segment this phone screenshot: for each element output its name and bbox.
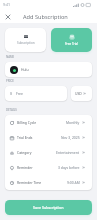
staticText: PRICE xyxy=(6,79,14,83)
button[interactable]: Reminder xyxy=(5,160,92,175)
staticText: DETAILS xyxy=(6,108,17,112)
button[interactable]: Category xyxy=(5,145,92,160)
button[interactable]: $ xyxy=(5,86,67,101)
button[interactable]: Close xyxy=(2,11,14,23)
staticText: Nov 3, 2025 xyxy=(61,135,80,140)
staticText: 3 days before xyxy=(58,165,80,170)
button[interactable]: Reminder Time xyxy=(5,175,92,190)
staticText: 9:00 AM xyxy=(67,180,80,185)
button[interactable]: Save Subscription xyxy=(5,200,92,215)
staticText: Trial Ends xyxy=(17,135,33,140)
staticText: Monthly xyxy=(66,120,80,125)
staticText: Free Trial xyxy=(65,42,78,46)
staticText: Reminder Time xyxy=(17,180,42,185)
button[interactable]: Trial Ends xyxy=(5,130,92,145)
staticText: Hulu xyxy=(21,67,29,72)
button[interactable]: Hulu xyxy=(5,62,92,77)
button[interactable]: Subscription xyxy=(5,28,46,52)
staticText: Subscription xyxy=(17,41,35,45)
button[interactable]: Free Trial xyxy=(51,28,92,52)
staticText: Entertainment xyxy=(56,150,80,155)
button[interactable]: USD xyxy=(71,86,92,101)
staticText: USD xyxy=(75,91,82,96)
staticText: Save Subscription xyxy=(33,205,64,210)
staticText: Billing Cycle xyxy=(17,120,37,125)
staticText: Category xyxy=(17,150,32,155)
button[interactable]: Billing Cycle xyxy=(5,115,92,130)
staticText: Reminder xyxy=(17,165,33,170)
staticText: Free xyxy=(16,91,23,96)
staticText: Add Subscription xyxy=(23,13,68,21)
staticText: $ xyxy=(10,91,13,96)
staticText: 9:41 xyxy=(3,2,11,7)
staticText: NAME xyxy=(6,55,15,59)
